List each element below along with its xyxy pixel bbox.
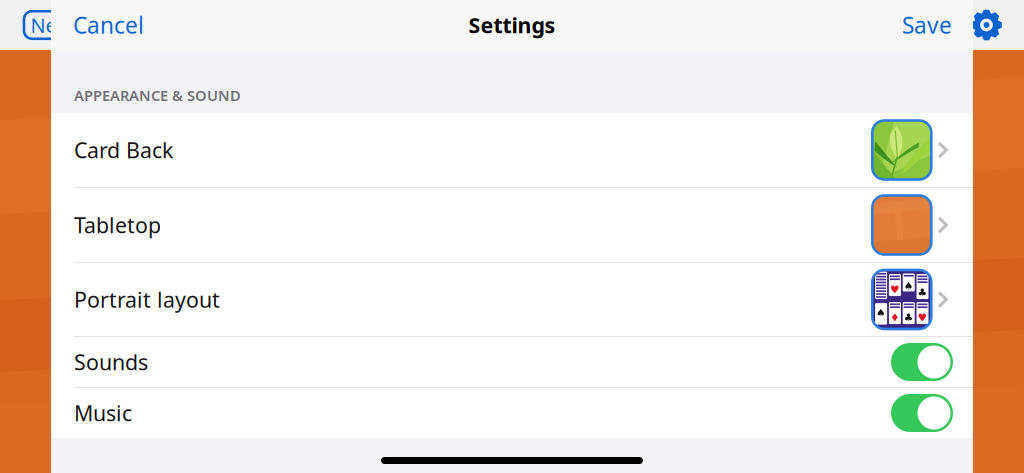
staticText: ♦ (890, 311, 900, 323)
button[interactable]: New (24, 11, 79, 39)
staticText: ♥ (917, 311, 927, 323)
staticText: New (30, 12, 72, 38)
button[interactable]: Portrait layout (51, 263, 973, 336)
staticText: ♣ (904, 311, 914, 323)
staticText: Settings (468, 11, 555, 39)
staticText: APPEARANCE & SOUND (74, 85, 241, 105)
staticText: ♠ (904, 280, 914, 292)
staticText: ♥ (890, 283, 900, 295)
staticText: Cancel (73, 10, 144, 40)
button[interactable]: Card Back (51, 113, 973, 187)
button[interactable]: Cancel (73, 10, 144, 40)
staticText: ♠ (876, 307, 886, 319)
staticText: Save (902, 10, 952, 40)
button[interactable]: Tabletop (51, 188, 973, 262)
staticText: ♣ (917, 286, 927, 298)
staticText: Portrait layout (74, 285, 220, 314)
button[interactable]: Music (51, 388, 973, 438)
button[interactable]: Settings (971, 9, 1002, 40)
staticText: Tabletop (74, 211, 161, 239)
staticText: Sounds (74, 348, 148, 376)
button[interactable]: Sounds (51, 337, 973, 387)
staticText: Music (74, 399, 132, 427)
button[interactable]: Save (902, 10, 952, 40)
staticText: Card Back (74, 136, 173, 164)
